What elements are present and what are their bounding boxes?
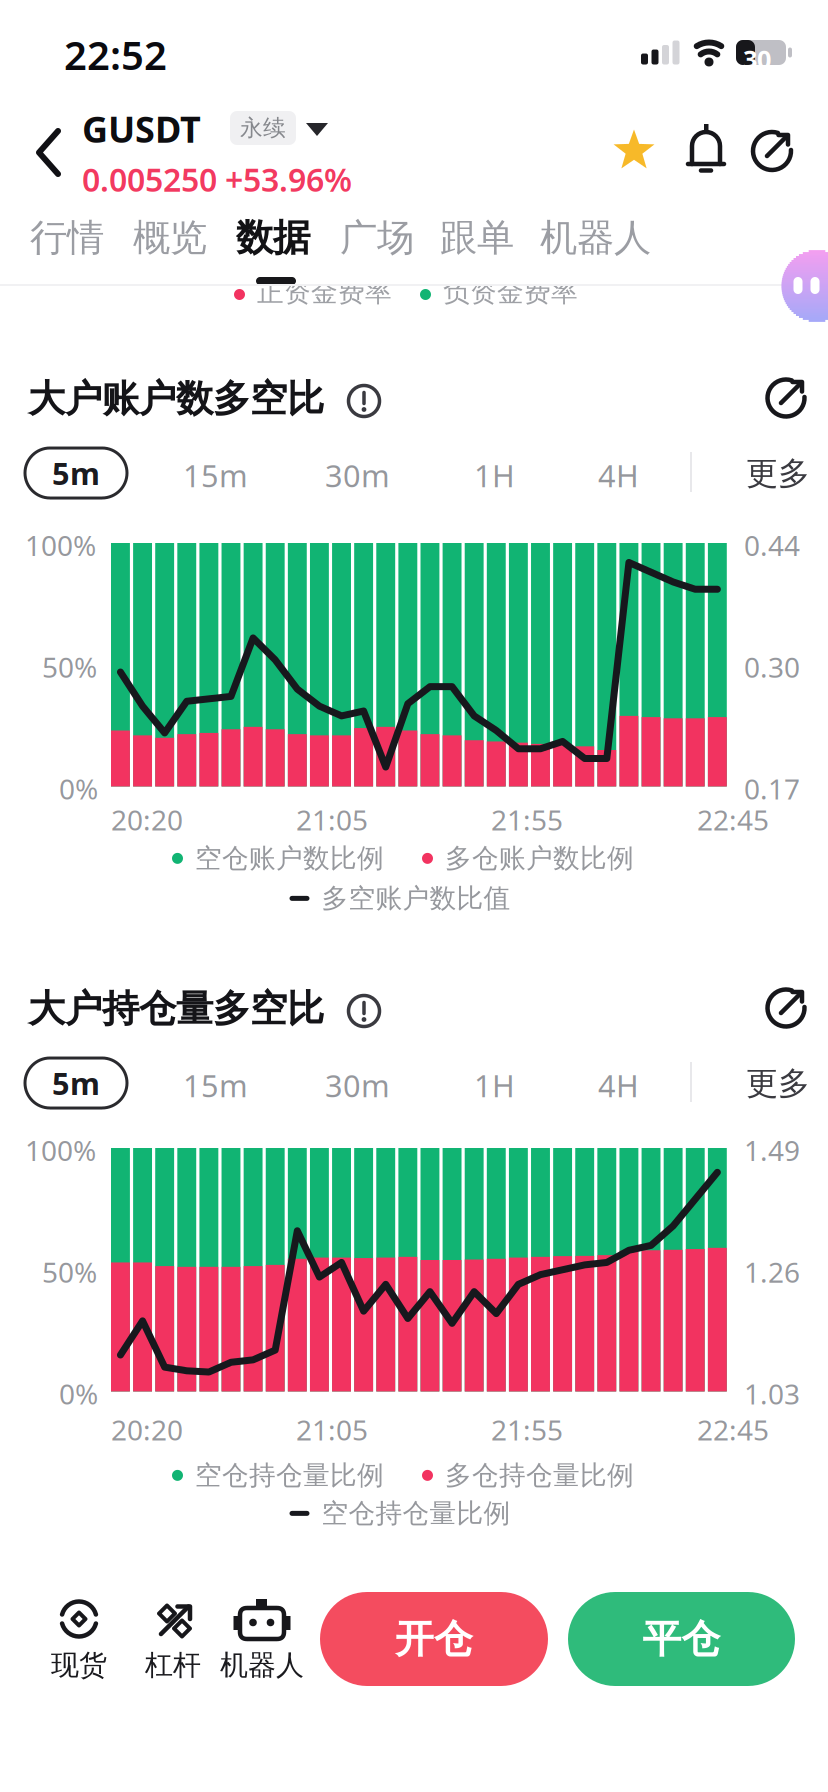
button[interactable]: 跟单 <box>440 215 514 261</box>
staticText: 1.03 <box>744 1375 800 1412</box>
staticText: 21:55 <box>491 1411 563 1448</box>
staticText: 20:20 <box>111 801 183 838</box>
staticText: 1.26 <box>744 1253 800 1290</box>
staticText: 正资金费率 <box>257 276 392 309</box>
button[interactable]: 机器人 <box>220 1597 304 1682</box>
staticText: 4H <box>598 455 639 496</box>
button[interactable]: 5m <box>25 448 127 498</box>
button[interactable]: 30m <box>325 1065 390 1106</box>
staticText: 大户持仓量多空比 <box>28 986 324 1032</box>
staticText: 30m <box>325 1065 390 1106</box>
staticText: 0% <box>59 1375 98 1412</box>
staticText: 50% <box>42 648 97 685</box>
button[interactable]: 分享 <box>764 986 808 1030</box>
staticText: 22:52 <box>64 28 167 81</box>
button[interactable]: 行情 <box>30 215 104 261</box>
staticText: 杠杆 <box>145 1648 201 1682</box>
staticText: 开仓 <box>395 1615 473 1663</box>
button[interactable]: 1H <box>474 1065 515 1106</box>
staticText: 22:45 <box>697 1411 769 1448</box>
button[interactable]: 平仓 <box>568 1592 795 1686</box>
staticText: 0.17 <box>744 770 800 807</box>
staticText: 广场 <box>340 215 414 261</box>
button[interactable]: 收藏 <box>612 129 656 173</box>
button[interactable]: 说明 <box>346 383 382 419</box>
staticText: 5m <box>52 1063 100 1103</box>
button[interactable]: 分享 <box>750 129 794 173</box>
staticText: 平仓 <box>642 1615 720 1663</box>
button[interactable]: 概览 <box>133 215 207 261</box>
staticText: 行情 <box>30 215 104 261</box>
button[interactable]: 分享 <box>764 376 808 420</box>
staticText: 机器人 <box>540 215 651 261</box>
staticText: 多仓账户数比例 <box>445 842 634 875</box>
button[interactable]: 15m <box>183 455 248 496</box>
staticText: 30m <box>325 455 390 496</box>
staticText: 更多 <box>746 1064 810 1103</box>
button[interactable]: 快捷菜单 <box>780 251 828 322</box>
staticText: 机器人 <box>220 1648 304 1682</box>
button[interactable]: 杠杆 <box>145 1597 201 1682</box>
button[interactable]: 更多 <box>746 1064 810 1103</box>
staticText: 0.005250 +53.96% <box>82 158 352 200</box>
button[interactable]: 现货 <box>51 1597 107 1682</box>
staticText: 空仓持仓量比例 <box>321 1497 510 1530</box>
staticText: 21:05 <box>296 1411 368 1448</box>
staticText: 多仓持仓量比例 <box>445 1459 634 1492</box>
button[interactable]: 5m <box>25 1058 127 1108</box>
staticText: 15m <box>183 1065 248 1106</box>
staticText: 多空账户数比值 <box>321 882 510 915</box>
staticText: 100% <box>25 1131 96 1169</box>
button[interactable]: 30m <box>325 455 390 496</box>
staticText: 15m <box>183 455 248 496</box>
button[interactable]: 说明 <box>346 993 382 1029</box>
staticText: 永续 <box>240 114 286 142</box>
button[interactable]: 数据 <box>236 215 310 261</box>
button[interactable]: 机器人 <box>540 215 651 261</box>
staticText: 50% <box>42 1253 97 1290</box>
button[interactable]: Back <box>33 130 67 176</box>
button[interactable]: 更多 <box>746 454 810 493</box>
staticText: 大户账户数多空比 <box>28 376 324 422</box>
staticText: 1H <box>474 1065 515 1106</box>
staticText: 数据 <box>236 215 310 261</box>
staticText: 30 <box>743 42 771 76</box>
button[interactable]: 4H <box>598 455 639 496</box>
button[interactable]: 1H <box>474 455 515 496</box>
button[interactable]: 4H <box>598 1065 639 1106</box>
staticText: 负资金费率 <box>443 276 578 309</box>
button[interactable]: 开仓 <box>320 1592 548 1686</box>
button[interactable]: 15m <box>183 1065 248 1106</box>
staticText: 空仓账户数比例 <box>195 842 384 875</box>
staticText: 22:45 <box>697 801 769 838</box>
staticText: 20:20 <box>111 1411 183 1448</box>
staticText: 跟单 <box>440 215 514 261</box>
staticText: 1H <box>474 455 515 496</box>
button[interactable]: 提醒 <box>684 118 728 176</box>
staticText: 空仓持仓量比例 <box>195 1459 384 1492</box>
button[interactable]: 合约类型 <box>230 111 330 145</box>
staticText: 4H <box>598 1065 639 1106</box>
staticText: 21:55 <box>491 801 563 838</box>
staticText: 1.49 <box>744 1131 800 1169</box>
staticText: 0% <box>59 770 98 807</box>
staticText: 100% <box>25 526 96 564</box>
staticText: 5m <box>52 453 100 493</box>
staticText: 现货 <box>51 1648 107 1682</box>
staticText: GUSDT <box>82 105 201 153</box>
staticText: 0.30 <box>744 648 800 685</box>
staticText: 0.44 <box>744 526 800 564</box>
staticText: 21:05 <box>296 801 368 838</box>
button[interactable]: 广场 <box>340 215 414 261</box>
staticText: 更多 <box>746 454 810 493</box>
staticText: 概览 <box>133 215 207 261</box>
